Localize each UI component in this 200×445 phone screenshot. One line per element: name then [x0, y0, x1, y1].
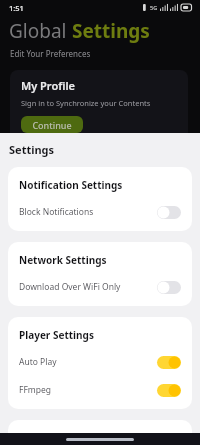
staticText: Auto Play — [19, 356, 57, 368]
staticText: Settings — [72, 18, 150, 44]
button[interactable]: Download Over WiFi Only — [19, 279, 181, 295]
button[interactable]: Block Notifications — [19, 204, 181, 220]
staticText: Global — [9, 18, 72, 44]
button[interactable]: Auto Play — [19, 354, 181, 370]
staticText: Download Over WiFi Only — [19, 281, 121, 293]
button[interactable]: Toggle off — [157, 206, 181, 219]
button[interactable]: Continue — [21, 116, 83, 133]
button[interactable]: Toggle off — [157, 281, 181, 294]
button[interactable]: My Profile — [10, 70, 188, 133]
staticText: My Profile — [21, 78, 75, 93]
staticText: Continue — [32, 119, 72, 131]
button[interactable]: Toggle on — [157, 356, 181, 369]
staticText: FFmpeg — [19, 384, 52, 396]
staticText: Settings — [9, 142, 55, 157]
staticText: 1:51 — [9, 3, 24, 13]
button[interactable]: FFmpeg — [19, 382, 181, 398]
staticText: Notification Settings — [19, 178, 123, 192]
staticText: Player Settings — [19, 328, 94, 342]
button[interactable]: Toggle on — [157, 384, 181, 397]
staticText: Block Notifications — [19, 206, 94, 218]
staticText: Sign in to Synchronize your Contents — [21, 98, 151, 108]
staticText: Network Settings — [19, 253, 107, 267]
staticText: 5G — [150, 4, 158, 11]
staticText: Edit Your Preferences — [10, 48, 91, 59]
